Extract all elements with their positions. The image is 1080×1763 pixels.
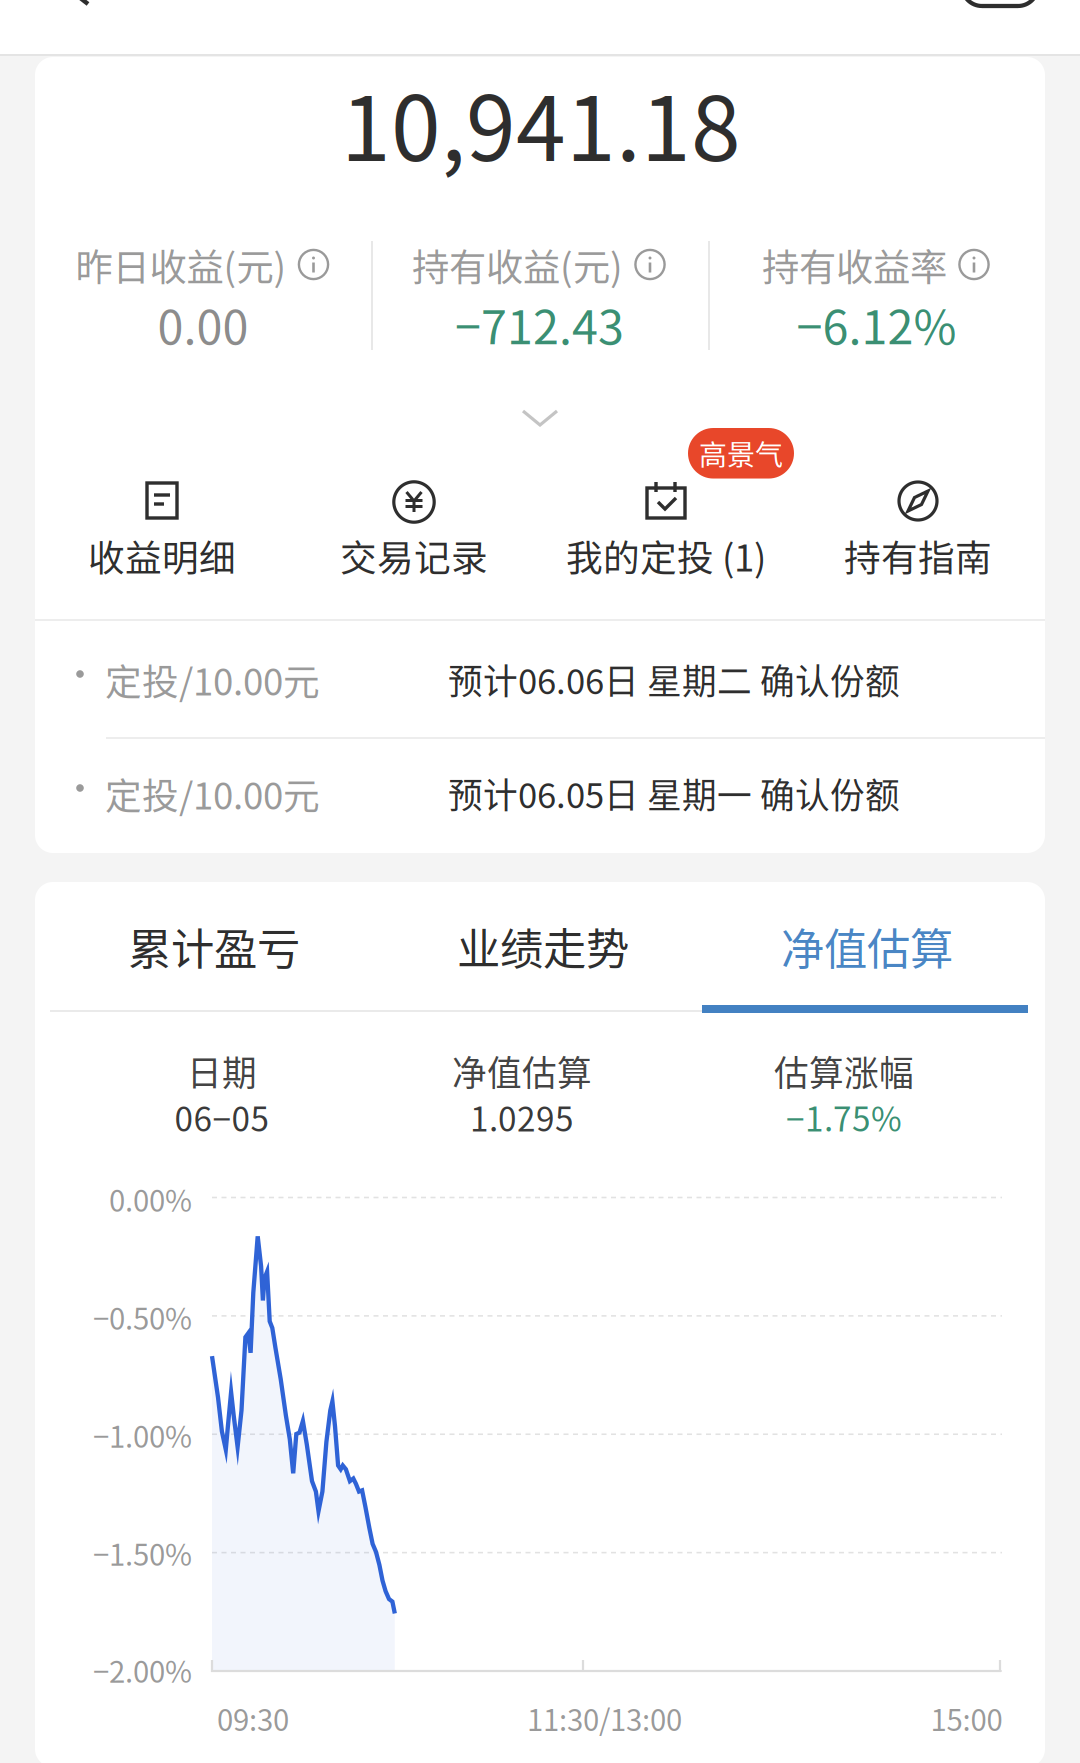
staticText: 日期 (187, 1046, 257, 1096)
staticText: −1.50% (93, 1532, 192, 1574)
button[interactable]: 业绩走势 (380, 883, 706, 1009)
button[interactable]: 净值估算 (704, 883, 1030, 1009)
button[interactable]: 累计盈亏 (51, 883, 377, 1009)
staticText: 定投/10.00元 (105, 767, 320, 820)
staticText: 业绩走势 (457, 915, 629, 977)
staticText: −1.00% (93, 1414, 192, 1456)
staticText: 收益明细 (88, 529, 236, 582)
staticText: −6.12% (796, 290, 956, 358)
staticText: 10,941.18 (341, 57, 741, 187)
button[interactable]: 定投/10.00元 (35, 737, 1045, 849)
staticText: −0.50% (93, 1296, 192, 1338)
button[interactable]: More options (962, 0, 1038, 6)
staticText: 定投/10.00元 (105, 653, 320, 706)
staticText: 净值估算 (781, 915, 953, 977)
button[interactable]: Back (64, 0, 94, 6)
staticText: 累计盈亏 (128, 915, 300, 977)
staticText: 09:30 (217, 1697, 289, 1739)
staticText: 交易记录 (340, 529, 488, 582)
staticText: 0.00 (157, 290, 248, 358)
staticText: 净值估算 (452, 1046, 592, 1096)
button[interactable]: 交易记录 (288, 481, 540, 589)
staticText: 持有收益(元) (412, 238, 623, 292)
staticText: 0.00% (109, 1178, 192, 1220)
staticText: 06−05 (174, 1093, 269, 1141)
staticText: 估算涨幅 (774, 1046, 914, 1096)
staticText: 昨日收益(元) (75, 238, 286, 292)
staticText: 15:00 (930, 1697, 1002, 1739)
staticText: 1.0295 (470, 1093, 574, 1141)
button[interactable]: 收益明细 (36, 481, 288, 589)
button[interactable]: 我的定投 (1) (540, 481, 792, 589)
staticText: 预计06.06日 星期二 确认份额 (448, 654, 900, 704)
staticText: −1.75% (786, 1093, 902, 1141)
staticText: −712.43 (455, 290, 624, 358)
button[interactable]: 持有指南 (792, 481, 1044, 589)
staticText: 持有指南 (844, 529, 992, 582)
staticText: 预计06.05日 星期一 确认份额 (448, 768, 900, 818)
staticText: 高景气 (699, 433, 783, 473)
staticText: −2.00% (93, 1649, 192, 1691)
staticText: 11:30/13:00 (527, 1697, 682, 1739)
staticText: 持有收益率 (762, 238, 947, 292)
staticText: 我的定投 (1) (566, 529, 766, 582)
button[interactable]: 定投/10.00元 (35, 623, 1045, 735)
